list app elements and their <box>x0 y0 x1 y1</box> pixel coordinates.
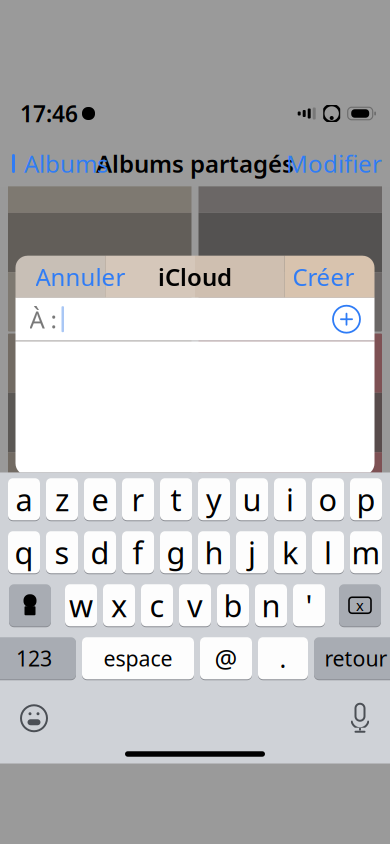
button[interactable]: m <box>350 530 382 574</box>
button[interactable]: Majuscule <box>9 583 51 627</box>
staticText: Modifier <box>286 148 382 179</box>
staticText: i <box>286 479 294 520</box>
staticText: r <box>131 479 144 520</box>
button[interactable]: n <box>255 583 287 627</box>
staticText: b <box>223 585 242 626</box>
staticText: À : <box>29 303 56 335</box>
button[interactable]: c <box>141 583 173 627</box>
staticText: v <box>187 585 203 626</box>
button[interactable]: i <box>274 477 306 521</box>
staticText: e <box>91 479 108 520</box>
staticText: c <box>149 585 164 626</box>
button[interactable]: z <box>46 477 78 521</box>
button[interactable]: Annuler <box>29 253 131 301</box>
button[interactable]: w <box>65 583 97 627</box>
staticText: ' <box>305 585 312 626</box>
button[interactable]: h <box>198 530 230 574</box>
staticText: x <box>356 595 364 615</box>
staticText: k <box>282 532 298 573</box>
staticText: 123 <box>16 644 52 672</box>
staticText: 17:46 <box>20 98 78 128</box>
button[interactable]: x <box>103 583 135 627</box>
staticText: o <box>318 479 337 520</box>
button[interactable]: retour <box>314 636 390 680</box>
button[interactable]: Dictée <box>340 693 380 743</box>
button[interactable]: . <box>258 636 308 680</box>
staticText: q <box>14 532 33 573</box>
staticText: espace <box>103 644 172 672</box>
button[interactable]: p <box>350 477 382 521</box>
button[interactable]: a <box>8 477 40 521</box>
staticText: d <box>90 532 109 573</box>
button[interactable]: u <box>236 477 268 521</box>
button[interactable]: espace <box>82 636 194 680</box>
button[interactable]: f <box>122 530 154 574</box>
button[interactable]: Emoji <box>10 694 58 742</box>
staticText: y <box>206 479 222 520</box>
button[interactable]: l <box>312 530 344 574</box>
staticText: h <box>204 532 223 573</box>
staticText: . <box>279 641 286 675</box>
staticText: s <box>54 532 69 573</box>
button[interactable]: t <box>160 477 192 521</box>
button[interactable]: g <box>160 530 192 574</box>
button[interactable]: y <box>198 477 230 521</box>
button[interactable]: d <box>84 530 116 574</box>
button[interactable]: Ajouter un contact <box>328 301 364 337</box>
staticText: g <box>166 532 185 573</box>
staticText: a <box>15 479 32 520</box>
staticText: u <box>242 479 261 520</box>
button[interactable]: ' <box>293 583 325 627</box>
staticText: Albums <box>24 148 108 179</box>
button[interactable]: Supprimer <box>339 583 381 627</box>
button[interactable]: Créer <box>286 253 360 301</box>
staticText: f <box>132 532 143 573</box>
staticText: j <box>248 532 256 573</box>
staticText: t <box>170 479 181 520</box>
staticText: Annuler <box>35 261 125 293</box>
staticText: w <box>69 585 93 626</box>
staticText: z <box>55 479 69 520</box>
staticText: n <box>261 585 280 626</box>
button[interactable]: Modifier <box>286 142 390 185</box>
button[interactable]: v <box>179 583 211 627</box>
button[interactable]: o <box>312 477 344 521</box>
button[interactable]: j <box>236 530 268 574</box>
button[interactable]: s <box>46 530 78 574</box>
staticText: p <box>356 479 375 520</box>
button[interactable]: @ <box>200 636 252 680</box>
staticText: x <box>111 585 127 626</box>
button[interactable]: Albums <box>0 142 108 185</box>
button[interactable]: e <box>84 477 116 521</box>
button[interactable]: 123 <box>0 636 76 680</box>
button[interactable]: k <box>274 530 306 574</box>
staticText: retour <box>324 644 387 672</box>
button[interactable]: r <box>122 477 154 521</box>
button[interactable]: b <box>217 583 249 627</box>
staticText: @ <box>214 641 237 675</box>
staticText: Albums partagés <box>96 148 294 179</box>
staticText: m <box>351 532 380 573</box>
button[interactable]: q <box>8 530 40 574</box>
staticText: l <box>324 532 332 573</box>
staticText: iCloud <box>158 261 232 293</box>
staticText: Créer <box>292 261 354 293</box>
